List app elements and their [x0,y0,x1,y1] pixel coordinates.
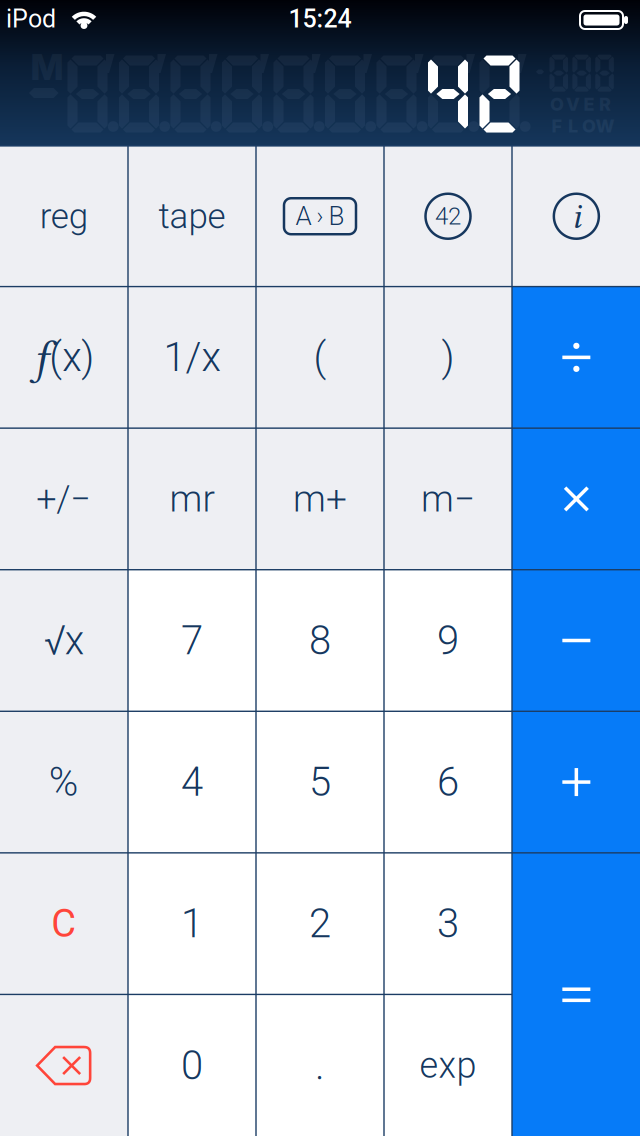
staticText: reg [40,196,88,237]
staticText: mr [169,477,214,521]
staticText: 4 [181,759,203,805]
staticText: 15:24 [288,4,351,34]
button[interactable]: 5 [257,712,383,852]
button[interactable]: 8 [257,570,383,711]
button[interactable]: m+ [257,429,383,569]
button[interactable]: backspace [0,995,127,1136]
staticText: 0 [181,1042,203,1089]
staticText: 5 [309,759,331,805]
button[interactable]: exp [385,995,511,1136]
staticText: O [550,93,564,115]
button[interactable]: percent [0,712,127,852]
button[interactable]: plus [513,712,640,852]
staticText: W [595,115,614,137]
button[interactable]: equals [513,854,640,1136]
staticText: tape [158,196,225,237]
button[interactable]: A to B [257,147,383,286]
staticText: i [571,196,581,237]
staticText: M [30,45,63,89]
staticText: 42 [435,202,461,230]
staticText: 7 [181,617,203,664]
staticText: A [295,201,311,231]
staticText: 2 [309,900,331,947]
staticText: 1/x [163,334,220,381]
staticText: +/− [36,478,91,520]
button[interactable]: point [257,995,383,1136]
button[interactable]: 1 [129,854,255,994]
button[interactable]: tape [129,147,255,286]
button[interactable]: 0 [129,995,255,1136]
staticText: 3 [437,900,459,947]
staticText: O [582,115,596,137]
button[interactable]: Info [513,147,640,286]
staticText: V [566,93,580,115]
button[interactable]: ) [385,287,511,427]
button[interactable]: minus [513,570,640,711]
staticText: m− [421,477,475,521]
button[interactable]: clear [0,854,127,994]
staticText: L [568,115,578,137]
staticText: exp [419,1044,476,1087]
button[interactable]: reg [0,147,127,286]
button[interactable]: f(x) [0,287,127,427]
staticText: 6 [437,759,459,805]
button[interactable]: 42 [385,147,511,286]
staticText: F [551,115,562,137]
staticText: % [49,759,79,805]
button[interactable]: m− [385,429,511,569]
staticText: f [33,331,47,383]
staticText: √ [44,616,66,664]
button[interactable]: 6 [385,712,511,852]
staticText: ) [441,334,454,381]
staticText: 1 [181,900,203,947]
button[interactable]: ( [257,287,383,427]
staticText: B [328,201,344,231]
button[interactable]: divide [513,287,640,427]
button[interactable]: 3 [385,854,511,994]
staticText: (x) [49,334,94,381]
staticText: E [583,93,594,115]
button[interactable]: 9 [385,570,511,711]
button[interactable]: 1/x [129,287,255,427]
button[interactable]: 4 [129,712,255,852]
button[interactable]: plus minus [0,429,127,569]
staticText: iPod [6,4,56,34]
button[interactable]: multiply [513,429,640,569]
button[interactable]: 7 [129,570,255,711]
staticText: 8 [309,617,331,664]
staticText: › [316,203,323,230]
button[interactable]: 2 [257,854,383,994]
staticText: x [65,617,84,664]
button[interactable]: square root [0,570,127,711]
staticText: m+ [293,477,347,521]
staticText: ( [313,334,326,381]
staticText: . [315,1042,325,1089]
button[interactable]: mr [129,429,255,569]
staticText: R [599,93,611,115]
staticText: C [51,901,76,946]
staticText: 9 [437,617,459,664]
